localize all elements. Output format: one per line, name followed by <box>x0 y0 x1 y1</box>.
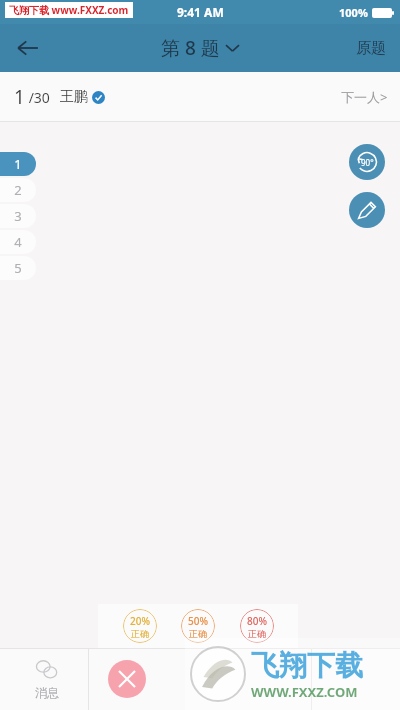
staticText: 5 <box>14 259 22 277</box>
button[interactable]: 1 <box>0 152 36 176</box>
button[interactable]: 4 <box>0 230 36 254</box>
staticText: 下一人> <box>341 88 388 106</box>
staticText: 飞翔下载 <box>251 648 363 683</box>
staticText: 80% <box>247 614 267 628</box>
button[interactable]: 5 <box>0 256 36 280</box>
staticText: 第 8 题 <box>161 35 220 61</box>
staticText: 正确 <box>189 628 207 639</box>
staticText: WWW.FXXZ.COM <box>251 683 358 701</box>
button[interactable]: 消息 <box>8 648 86 710</box>
staticText: 正确 <box>248 628 266 639</box>
staticText: 正确 <box>131 628 149 639</box>
staticText: /30 <box>25 88 50 107</box>
staticText: 20% <box>130 614 150 628</box>
button[interactable]: Back <box>6 26 50 70</box>
button[interactable]: 2 <box>0 178 36 202</box>
staticText: 飞翔下载 www.FXXZ.com <box>9 3 129 17</box>
button[interactable]: 3 <box>0 204 36 228</box>
staticText: 4 <box>14 233 22 251</box>
button[interactable]: Close <box>108 660 146 698</box>
button[interactable]: 下一人> <box>329 72 400 122</box>
button[interactable]: 80% <box>240 609 274 643</box>
staticText: 原题 <box>356 39 386 58</box>
button[interactable]: 第 8 题 <box>161 35 239 61</box>
staticText: 50% <box>188 614 208 628</box>
button[interactable]: 50% <box>181 609 215 643</box>
staticText: 9:41 AM <box>177 4 224 20</box>
staticText: 1 <box>14 155 22 173</box>
button[interactable]: 20% <box>123 609 157 643</box>
staticText: 王鹏 <box>60 88 88 106</box>
button[interactable]: 原题 <box>342 24 400 72</box>
staticText: 90° <box>361 157 374 168</box>
staticText: 消息 <box>35 685 59 700</box>
button[interactable]: Rotate 90 degrees <box>349 144 385 180</box>
staticText: 1 <box>14 84 25 110</box>
staticText: 3 <box>14 207 22 225</box>
staticText: 2 <box>14 181 22 199</box>
button[interactable]: Edit <box>349 192 385 228</box>
staticText: 100% <box>339 5 368 20</box>
